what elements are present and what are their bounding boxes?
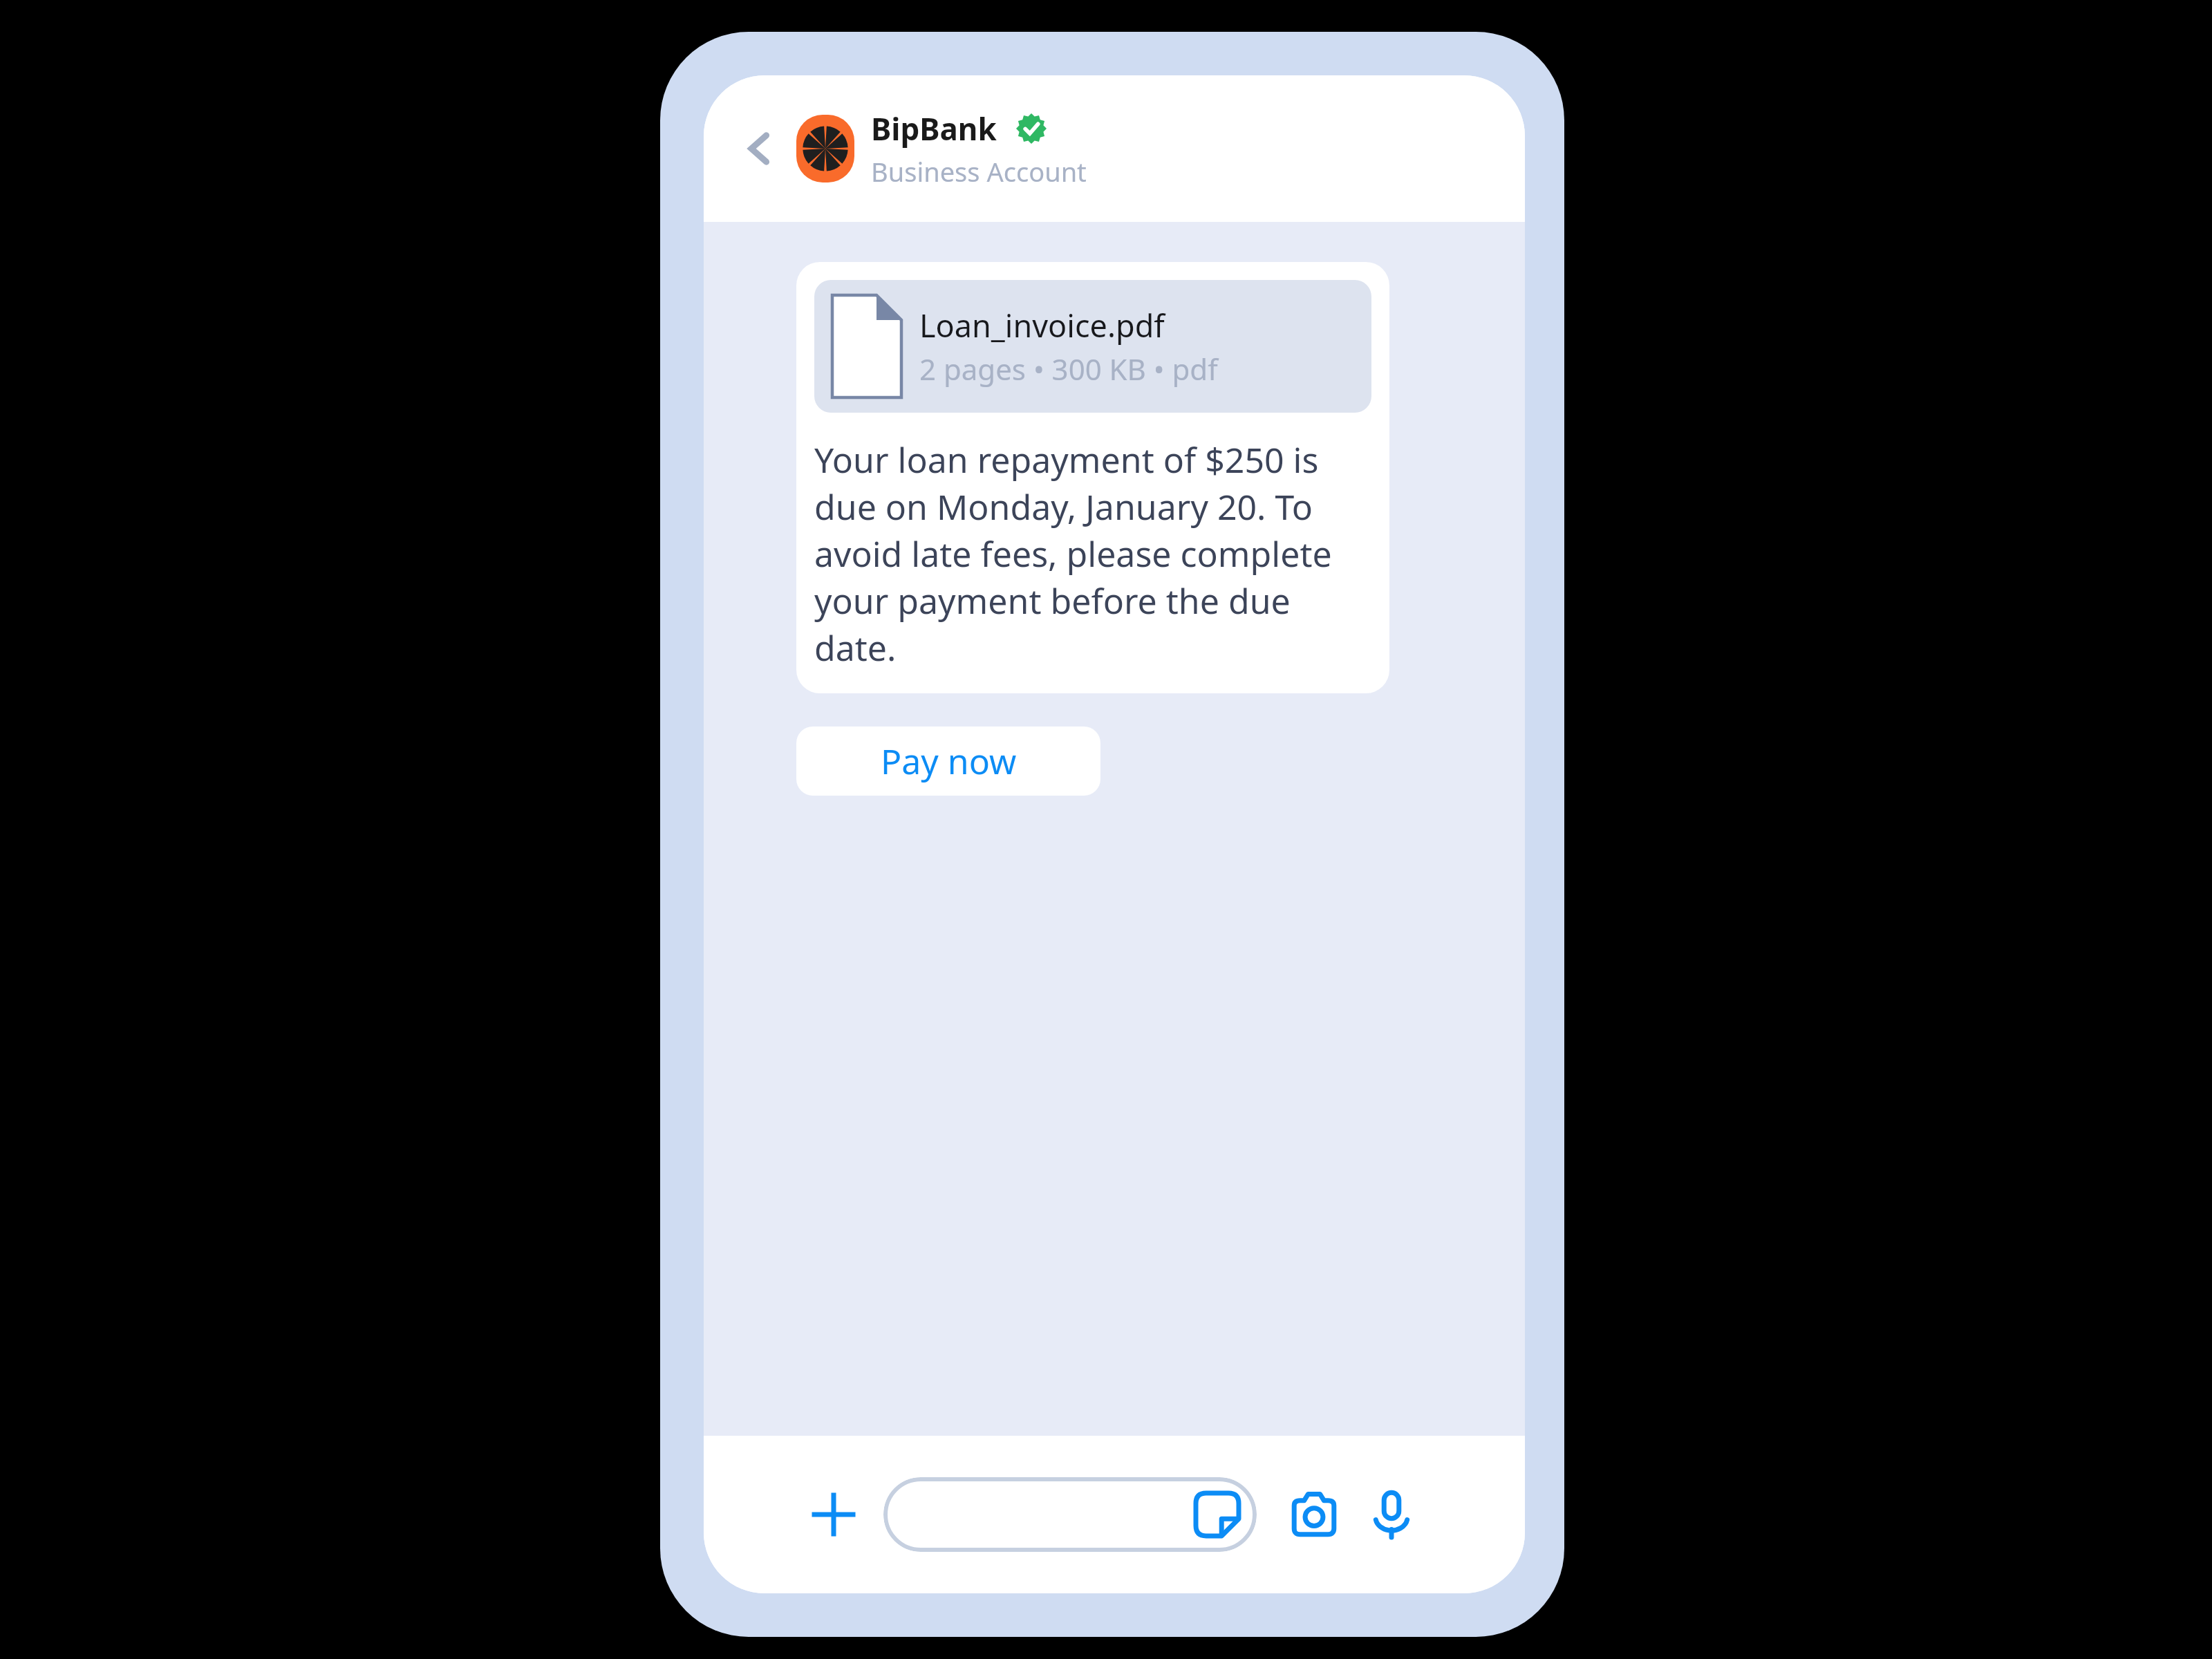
staticText: Loan_invoice.pdf — [919, 304, 1165, 346]
button[interactable]: Add attachment — [807, 1488, 860, 1541]
button[interactable]: Back — [730, 119, 789, 178]
button[interactable]: Pay now — [796, 727, 1100, 796]
staticText: 2 pages • 300 KB • pdf — [919, 349, 1218, 388]
staticText: BipBank — [871, 108, 997, 149]
staticText: Business Account — [871, 153, 1087, 189]
staticText: Your loan repayment of $250 is due on Mo… — [814, 436, 1371, 671]
button[interactable]: Voice message — [1362, 1485, 1421, 1544]
button[interactable]: Loan_invoice.pdf — [814, 280, 1371, 413]
button[interactable]: Camera — [1284, 1485, 1344, 1544]
button[interactable]: Stickers — [883, 1477, 1257, 1552]
button[interactable]: Stickers — [1193, 1490, 1241, 1539]
button[interactable]: Loan_invoice.pdf — [796, 262, 1389, 693]
staticText: Pay now — [881, 738, 1017, 785]
